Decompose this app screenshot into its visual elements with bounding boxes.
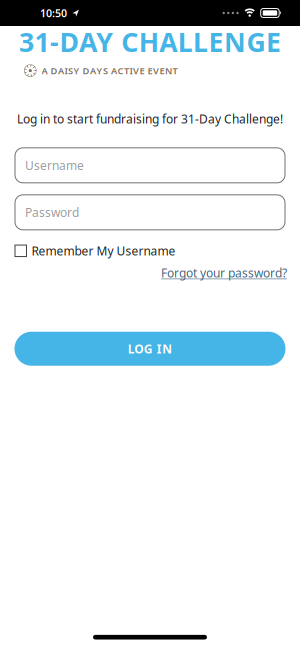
staticText: Log in to start fundraising for 31-Day C… (17, 111, 283, 127)
staticText: 31-DAY CHALLENGE (19, 24, 281, 59)
staticText: A DAISY DAYS ACTIVE EVENT (41, 64, 177, 77)
staticText: Password (25, 204, 79, 220)
staticText: Username (25, 157, 84, 173)
staticText: 10:50 (40, 6, 67, 20)
staticText: LOG IN (128, 341, 172, 357)
staticText: Forgot your password? (161, 265, 287, 281)
staticText: Remember My Username (31, 243, 175, 259)
